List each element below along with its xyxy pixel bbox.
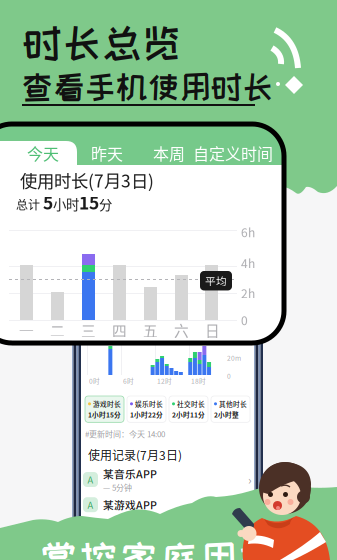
staticText: 某游戏APP [103, 497, 157, 512]
staticText: 0 [227, 371, 231, 381]
staticText: 2h [241, 284, 255, 302]
staticText: 时长总览 [23, 22, 181, 63]
staticText: A [87, 498, 93, 511]
staticText: 一 [19, 319, 34, 341]
staticText: 1小时15分 [88, 410, 121, 419]
staticText: 5 [43, 189, 53, 215]
staticText: 五 [143, 319, 158, 341]
button[interactable]: 其他时长 [211, 396, 250, 422]
staticText: 日 [205, 319, 220, 341]
staticText: 游戏时长 [93, 399, 121, 409]
staticText: 本周 [153, 141, 185, 165]
staticText: 15 [79, 189, 99, 215]
staticText: 掌控家庭用机 [40, 538, 277, 560]
staticText: › [248, 471, 252, 488]
staticText: 六 [174, 319, 189, 341]
button[interactable]: A [72, 466, 263, 493]
staticText: A [87, 473, 93, 486]
staticText: 12时 [157, 376, 172, 386]
staticText: 三 [81, 319, 96, 341]
staticText: 总计 [16, 196, 43, 213]
button[interactable]: 今天 [12, 141, 74, 165]
staticText: 0时 [89, 376, 100, 386]
staticText: 6时 [123, 376, 134, 386]
staticText: — 5分钟 [103, 481, 132, 493]
staticText: 今天 [27, 141, 59, 165]
button[interactable]: 社交时长 [169, 396, 208, 422]
button[interactable]: 昨天 [80, 141, 134, 165]
staticText: 40m [227, 334, 241, 344]
button[interactable]: A [72, 496, 263, 513]
button[interactable]: 娱乐时长 [127, 396, 166, 422]
staticText: 社交时长 [177, 399, 205, 409]
staticText: 昨天 [91, 141, 123, 165]
staticText: 二 [50, 319, 65, 341]
staticText: 1小时22分 [130, 410, 163, 419]
staticText: 娱乐时长 [135, 399, 163, 409]
staticText: 使用时长(7月3日) [20, 167, 154, 193]
staticText: 0 [241, 311, 248, 329]
staticText: 某音乐APP [103, 466, 157, 481]
button[interactable]: 本周 [142, 141, 196, 165]
staticText: 使用记录(7月3日) [88, 446, 182, 463]
staticText: 小时 [53, 194, 79, 213]
staticText: 查看手机使用时长 [22, 70, 273, 103]
staticText: 6h [241, 223, 255, 241]
staticText: #更新时间：今天 14:00 [85, 428, 165, 440]
staticText: 分 [99, 194, 112, 213]
staticText: 平均 [205, 273, 227, 288]
staticText: 四 [112, 319, 127, 341]
staticText: 18时 [191, 376, 206, 386]
staticText: 4h [241, 254, 255, 272]
staticText: 20m [227, 353, 241, 363]
button[interactable]: 游戏时长 [85, 396, 124, 422]
staticText: 2小时整 [214, 410, 239, 419]
staticText: 其他时长 [219, 399, 247, 409]
button[interactable]: 自定义时间 [192, 141, 274, 165]
staticText: 自定义时间 [193, 141, 273, 165]
staticText: 2小时11分 [172, 410, 205, 419]
